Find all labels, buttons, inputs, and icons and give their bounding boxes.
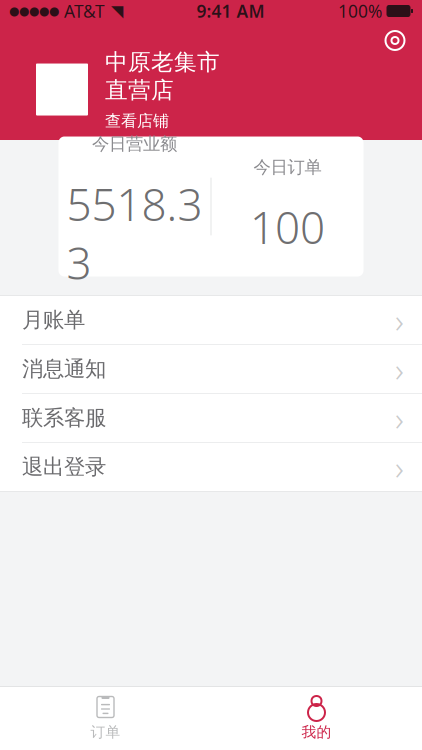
button[interactable]: 退出登录 bbox=[0, 443, 422, 491]
button[interactable]: Settings bbox=[376, 21, 414, 59]
staticText: ◥ bbox=[111, 2, 123, 20]
button[interactable]: 消息通知 bbox=[0, 345, 422, 393]
button[interactable]: 我的 bbox=[211, 687, 422, 750]
button[interactable]: 月账单 bbox=[0, 296, 422, 344]
staticText: 联系客服 bbox=[22, 405, 106, 431]
staticText: 5518.33 bbox=[66, 175, 202, 292]
staticText: › bbox=[395, 347, 404, 391]
button[interactable]: 联系客服 bbox=[0, 394, 422, 442]
staticText: 消息通知 bbox=[22, 356, 106, 382]
staticText: 我的 bbox=[301, 723, 331, 741]
staticText: › bbox=[395, 445, 404, 489]
staticText: 今日订单 bbox=[253, 156, 321, 178]
staticText: 9:41 AM bbox=[196, 0, 264, 22]
staticText: 退出登录 bbox=[22, 454, 106, 480]
staticText: 100% bbox=[338, 0, 382, 22]
staticText: 订单 bbox=[90, 723, 120, 741]
staticText: 中原老集市直营店 bbox=[105, 48, 220, 104]
staticText: 月账单 bbox=[22, 307, 85, 333]
staticText: 100 bbox=[250, 198, 325, 256]
staticText: ●●●●● bbox=[9, 4, 59, 18]
button[interactable]: 订单 bbox=[0, 687, 211, 750]
staticText: › bbox=[395, 396, 404, 440]
staticText: 今日营业额 bbox=[92, 133, 177, 155]
staticText: › bbox=[395, 298, 404, 342]
staticText: AT&T bbox=[64, 0, 105, 22]
staticText: 查看店铺 bbox=[105, 111, 169, 131]
button[interactable]: 中原老集市直营店 bbox=[0, 59, 422, 119]
